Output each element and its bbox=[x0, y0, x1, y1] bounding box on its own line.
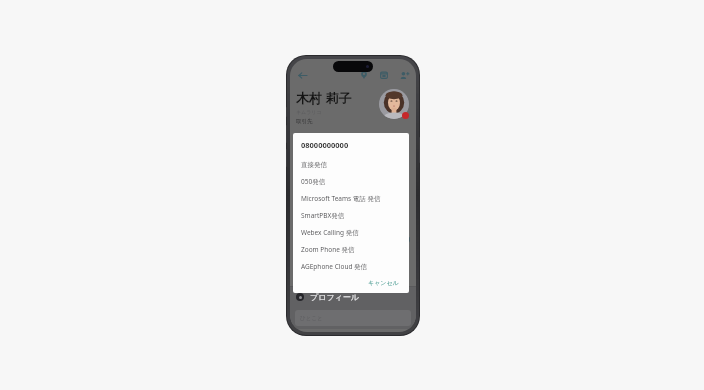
button[interactable]: AGEphone Cloud 発信 bbox=[301, 258, 402, 275]
button[interactable]: 直接発信 bbox=[301, 157, 402, 173]
staticText: Webex Calling 発信 bbox=[301, 228, 359, 237]
button[interactable]: キャンセル bbox=[365, 277, 402, 289]
staticText: ひとこと bbox=[300, 315, 323, 322]
button[interactable]: SmartPBX発信 bbox=[301, 207, 402, 224]
staticText: 取引先 bbox=[296, 118, 313, 125]
button[interactable]: Add contact bbox=[397, 68, 411, 82]
staticText: Zoom Phone 発信 bbox=[301, 245, 355, 254]
button[interactable]: プロフィール bbox=[290, 287, 416, 307]
button[interactable]: Zoom Phone 発信 bbox=[301, 241, 402, 258]
staticText: 木村 莉子 bbox=[296, 89, 352, 107]
button[interactable]: Calendar bbox=[377, 68, 391, 82]
staticText: プロフィール bbox=[310, 292, 359, 302]
staticText: Microsoft Teams 電話 発信 bbox=[301, 194, 381, 203]
button[interactable]: Back bbox=[295, 68, 309, 82]
button[interactable]: Send mail bbox=[400, 234, 411, 245]
button[interactable]: Location bbox=[357, 68, 371, 82]
staticText: 08000000000 bbox=[301, 140, 349, 150]
staticText: SmartPBX発信 bbox=[301, 211, 345, 220]
staticText: キャンセル bbox=[368, 279, 399, 287]
staticText: 直接発信 bbox=[301, 161, 327, 169]
button[interactable]: 050発信 bbox=[301, 173, 402, 190]
staticText: 050発信 bbox=[301, 177, 326, 186]
button[interactable]: Webex Calling 発信 bbox=[301, 224, 402, 241]
staticText: AGEphone Cloud 発信 bbox=[301, 262, 368, 271]
button[interactable]: Microsoft Teams 電話 発信 bbox=[301, 190, 402, 207]
staticText: Eメールアドレス1 bbox=[295, 232, 333, 238]
